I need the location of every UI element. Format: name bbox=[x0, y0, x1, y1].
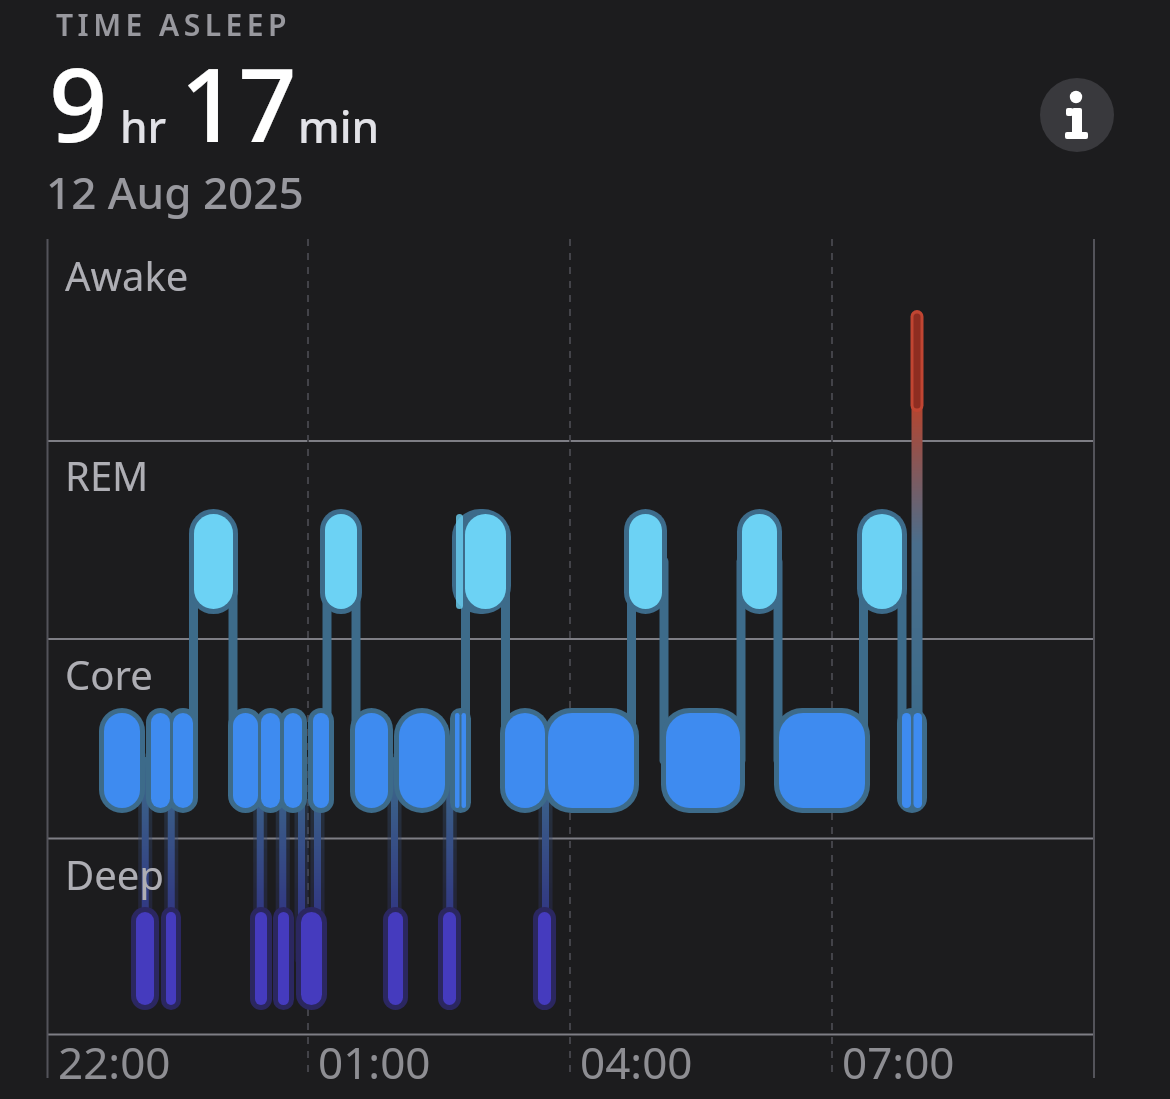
staticText: 22:00 bbox=[58, 1032, 171, 1092]
staticText: REM bbox=[65, 448, 149, 502]
staticText: hr bbox=[120, 96, 167, 156]
staticText: TIME ASLEEP bbox=[56, 4, 292, 45]
staticText: Deep bbox=[65, 847, 164, 901]
staticText: 9 bbox=[49, 33, 108, 172]
staticText: 04:00 bbox=[580, 1032, 693, 1092]
staticText: 07:00 bbox=[842, 1032, 955, 1092]
staticText: 17 bbox=[180, 33, 297, 172]
staticText: min bbox=[298, 96, 380, 156]
staticText: Awake bbox=[65, 248, 189, 302]
staticText: 12 Aug 2025 bbox=[46, 162, 304, 222]
staticText: Core bbox=[65, 647, 153, 701]
button[interactable] bbox=[1040, 78, 1114, 152]
staticText: 01:00 bbox=[318, 1032, 431, 1092]
